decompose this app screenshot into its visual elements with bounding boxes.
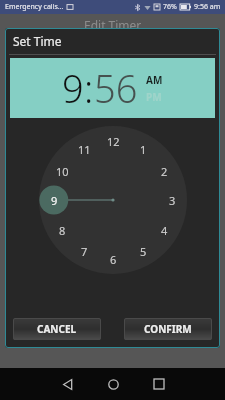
staticText: 56: [94, 62, 138, 114]
staticText: Edit Timer: [84, 17, 142, 33]
staticText: 4: [161, 223, 168, 238]
button[interactable]: AM: [146, 73, 163, 87]
staticText: 9: [51, 193, 58, 208]
button[interactable]: 56: [94, 62, 138, 114]
staticText: 5: [140, 244, 147, 259]
staticText: 8: [59, 223, 66, 238]
button[interactable]: CANCEL: [13, 318, 101, 340]
staticText: :: [84, 62, 94, 114]
staticText: 12: [107, 134, 120, 149]
staticText: AM: [146, 73, 163, 87]
button[interactable]: Back: [44, 368, 90, 400]
button[interactable]: CONFIRM: [124, 318, 212, 340]
staticText: CONFIRM: [144, 322, 192, 336]
button[interactable]: Clock face, hour 9 selected: [39, 126, 187, 274]
staticText: 9: [62, 62, 84, 114]
staticText: PM: [146, 90, 162, 104]
staticText: 6: [110, 252, 117, 267]
button[interactable]: 9: [62, 62, 84, 114]
button[interactable]: Recent apps: [136, 368, 182, 400]
staticText: CANCEL: [37, 322, 77, 336]
button[interactable]: Home: [90, 368, 136, 400]
staticText: 11: [78, 142, 91, 157]
staticText: 3: [169, 193, 176, 208]
staticText: 1: [140, 142, 147, 157]
button[interactable]: PM: [146, 90, 162, 104]
staticText: 2: [161, 164, 168, 179]
staticText: Set Time: [13, 33, 62, 49]
staticText: 7: [81, 244, 88, 259]
staticText: Emergency calls…: [5, 2, 64, 12]
staticText: 76%: [163, 2, 177, 12]
staticText: 9:56 am: [194, 2, 221, 12]
staticText: 10: [56, 164, 69, 179]
